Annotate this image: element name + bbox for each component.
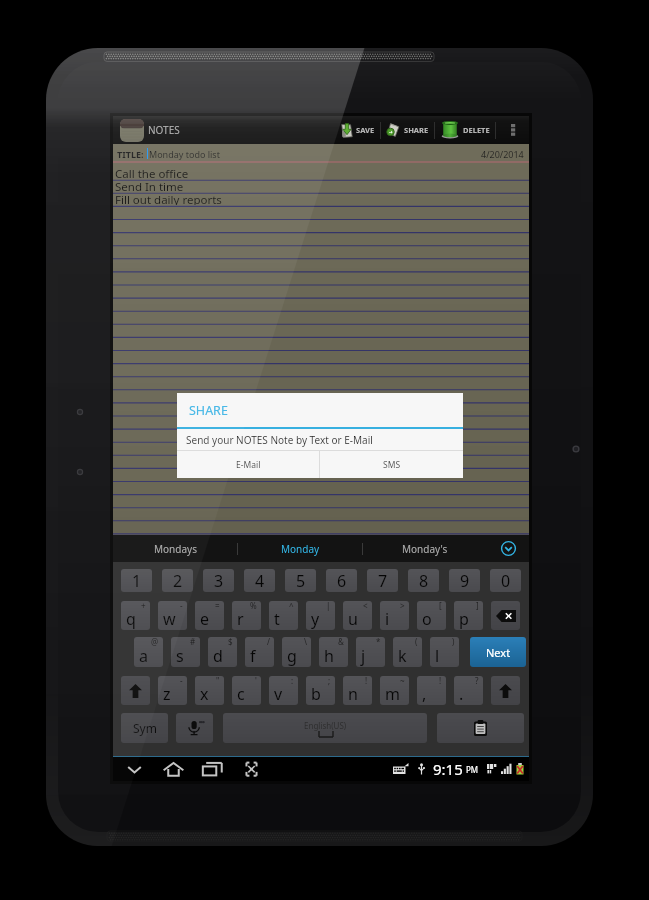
staticText: 4/20/2014 [481, 148, 524, 160]
button[interactable]: Screenshot [240, 758, 262, 780]
button[interactable]: 2 [162, 569, 193, 592]
staticText: Next [486, 645, 511, 660]
button[interactable]: ] [454, 601, 483, 630]
button[interactable]: 4 [244, 569, 275, 592]
button[interactable]: * [356, 637, 385, 667]
button[interactable]: SHARE [381, 116, 434, 144]
button[interactable]: " [195, 676, 224, 705]
button[interactable]: Monday [238, 535, 362, 562]
button[interactable]: : [269, 676, 298, 705]
button[interactable]: Mondays [113, 535, 237, 562]
button[interactable]: < [343, 601, 372, 630]
staticText: # [190, 637, 196, 647]
staticText: SMS [383, 459, 401, 471]
button[interactable]: More options [496, 116, 529, 144]
staticText: ( [415, 637, 418, 647]
button[interactable]: / [245, 637, 274, 667]
button[interactable]: ' [232, 676, 261, 705]
button[interactable]: 7 [367, 569, 398, 592]
button[interactable]: ~ [380, 676, 409, 705]
staticText: 0 [501, 570, 511, 592]
staticText: : [291, 676, 294, 686]
staticText: v [274, 683, 283, 705]
button[interactable]: ! [417, 676, 446, 705]
button[interactable]: - [158, 601, 187, 630]
button[interactable]: Shift [491, 676, 520, 705]
staticText: " [216, 676, 220, 686]
button[interactable]: 8 [408, 569, 439, 592]
staticText: Send In time [115, 179, 184, 192]
button[interactable]: Recent apps [201, 758, 223, 780]
button[interactable]: \ [282, 637, 311, 667]
button[interactable]: Expand suggestions [487, 535, 529, 562]
staticText: h [324, 645, 334, 667]
button[interactable]: ) [430, 637, 459, 667]
button[interactable]: Space [223, 713, 427, 743]
button[interactable]: Delete [491, 601, 520, 630]
staticText: ' [255, 676, 257, 686]
button[interactable]: Monday's [363, 535, 487, 562]
button[interactable]: Home [162, 758, 184, 780]
button[interactable]: $ [208, 637, 237, 667]
button[interactable]: [ [417, 601, 446, 630]
staticText: $ [228, 637, 233, 647]
staticText: 9 [460, 570, 470, 592]
staticText: s [176, 645, 184, 667]
staticText: a [139, 645, 148, 667]
button[interactable]: = [195, 601, 224, 630]
button[interactable]: Notes app [120, 119, 144, 142]
button[interactable]: ? [454, 676, 483, 705]
staticText: ! [365, 676, 368, 686]
button[interactable]: ( [393, 637, 422, 667]
staticText: [ [439, 601, 442, 611]
button[interactable]: Voice input [176, 713, 213, 743]
button[interactable]: ^ [269, 601, 298, 630]
staticText: c [237, 683, 245, 705]
button[interactable]: 3 [203, 569, 234, 592]
staticText: \ [304, 637, 307, 647]
staticText: Fill out daily reports [115, 192, 222, 205]
staticText: r [237, 608, 244, 630]
button[interactable]: Next [470, 637, 526, 667]
staticText: 5 [296, 570, 306, 592]
button[interactable]: SAVE [336, 116, 380, 144]
button[interactable]: > [380, 601, 409, 630]
button[interactable]: Shift [121, 676, 150, 705]
staticText: E-Mail [236, 459, 261, 471]
button[interactable]: & [319, 637, 348, 667]
staticText: j [361, 645, 366, 667]
button[interactable]: SMS [320, 451, 463, 478]
button[interactable]: 5 [285, 569, 316, 592]
button[interactable]: Clipboard [437, 713, 524, 743]
button[interactable]: Sym [121, 713, 168, 743]
button[interactable]: @ [134, 637, 163, 667]
button[interactable]: ! [343, 676, 372, 705]
button[interactable]: E-Mail [177, 451, 319, 478]
staticText: < [363, 601, 368, 611]
staticText: English(US) [304, 720, 347, 731]
staticText: . [459, 683, 464, 705]
button[interactable]: 6 [326, 569, 357, 592]
button[interactable]: + [121, 601, 150, 630]
staticText: > [400, 601, 405, 611]
staticText: Monday's [402, 542, 448, 556]
staticText: 3 [214, 570, 224, 592]
staticText: 9:15 [433, 759, 463, 779]
staticText: Monday [281, 542, 320, 556]
button[interactable]: ; [306, 676, 335, 705]
button[interactable]: 9 [449, 569, 480, 592]
button[interactable]: Back [123, 758, 145, 780]
staticText: ) [452, 637, 455, 647]
staticText: NOTES [148, 123, 180, 137]
staticText: t [274, 608, 280, 630]
staticText: 2 [173, 570, 183, 592]
button[interactable]: % [232, 601, 261, 630]
staticText: i [385, 608, 390, 630]
button[interactable]: 0 [490, 569, 521, 592]
button[interactable]: | [306, 601, 335, 630]
button[interactable]: 1 [121, 569, 152, 592]
button[interactable]: # [171, 637, 200, 667]
button[interactable]: - [158, 676, 187, 705]
staticText: z [163, 683, 171, 705]
button[interactable]: DELETE [435, 116, 495, 144]
